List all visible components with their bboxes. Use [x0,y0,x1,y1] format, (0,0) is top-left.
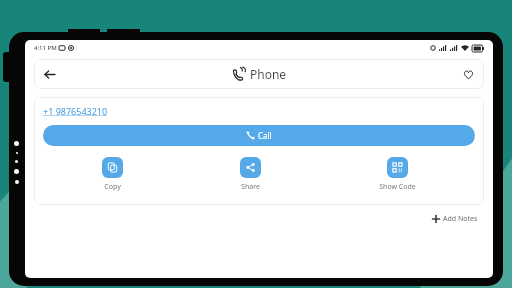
button[interactable]: Show Code [377,155,418,194]
button[interactable]: Favorite [458,64,478,84]
staticText: +1 9876543210 [43,105,108,117]
button[interactable]: Call [43,125,475,146]
staticText: Phone [250,66,287,82]
button[interactable]: Back [39,64,59,84]
button[interactable]: Add Notes [429,212,481,226]
staticText: Show Code [379,182,416,192]
staticText: Add Notes [443,214,478,224]
staticText: 4:11 PM [34,44,57,52]
staticText: Share [241,182,260,192]
staticText: Call [258,130,272,141]
button[interactable]: Share [238,155,263,194]
staticText: Copy [104,182,121,192]
button[interactable]: Copy [100,155,125,194]
